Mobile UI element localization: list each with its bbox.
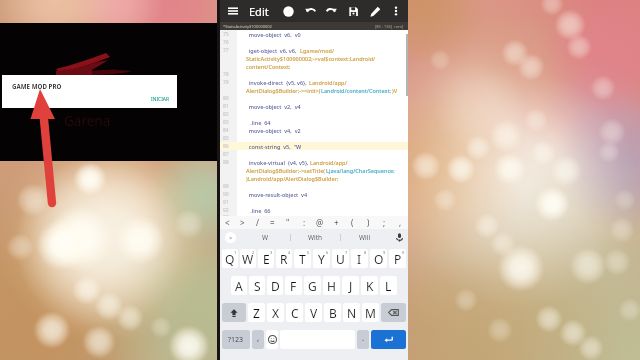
button[interactable]: B bbox=[324, 303, 341, 322]
staticText: Edit bbox=[249, 4, 269, 19]
button[interactable]: W bbox=[240, 229, 290, 245]
button[interactable]: T bbox=[294, 249, 311, 268]
button[interactable]: ; bbox=[376, 216, 392, 229]
staticText: H bbox=[327, 278, 336, 294]
button[interactable]: C bbox=[286, 303, 303, 322]
staticText: 5 bbox=[307, 250, 310, 255]
button[interactable]: J bbox=[342, 276, 359, 295]
button[interactable]: INICIAR bbox=[151, 96, 170, 103]
button[interactable]: ( bbox=[344, 216, 360, 229]
button[interactable]: U bbox=[332, 249, 349, 268]
button[interactable]: : bbox=[296, 216, 312, 229]
button[interactable]: K bbox=[361, 276, 378, 295]
staticText: move-object v2, v4 bbox=[246, 103, 301, 110]
staticText: [85 : 136] rom] bbox=[375, 24, 404, 29]
staticText: P bbox=[394, 251, 402, 267]
button[interactable]: Edit bbox=[245, 0, 273, 22]
button[interactable]: V bbox=[305, 303, 322, 322]
button[interactable]: ) bbox=[360, 216, 376, 229]
staticText: T bbox=[299, 251, 306, 267]
staticText: I bbox=[357, 251, 362, 267]
staticText: E bbox=[263, 251, 270, 267]
staticText: With bbox=[308, 233, 323, 242]
button[interactable]: Redo bbox=[321, 0, 341, 22]
staticText: A bbox=[235, 278, 243, 294]
button[interactable]: Q bbox=[222, 249, 238, 268]
button[interactable]: , bbox=[252, 330, 264, 349]
button[interactable]: Backspace bbox=[381, 303, 406, 322]
button[interactable]: + bbox=[328, 216, 344, 229]
staticText: @ bbox=[316, 217, 324, 228]
staticText: M bbox=[365, 305, 376, 321]
button[interactable]: F bbox=[285, 276, 302, 295]
staticText: / bbox=[256, 217, 259, 228]
button[interactable]: Edit text bbox=[365, 0, 385, 22]
staticText: 9 bbox=[383, 250, 386, 255]
button[interactable]: Expand suggestions bbox=[220, 229, 240, 245]
staticText: Z bbox=[253, 305, 260, 321]
staticText: move-object v4, v2 bbox=[246, 127, 301, 134]
staticText: 6 bbox=[326, 250, 329, 255]
staticText: invoke-direct {v5, v6}, bbox=[246, 79, 309, 86]
staticText: . bbox=[362, 332, 365, 343]
button[interactable]: ?123 bbox=[222, 330, 250, 349]
button[interactable]: Shift bbox=[222, 303, 246, 322]
button[interactable]: N bbox=[343, 303, 360, 322]
button[interactable]: GAME MOD PRO bbox=[2, 75, 177, 108]
staticText: INICIAR bbox=[151, 96, 170, 103]
staticText: AlertDialog$Builder;->setTitle( bbox=[246, 167, 326, 174]
staticText: N bbox=[347, 305, 357, 321]
button[interactable]: With bbox=[290, 229, 340, 245]
button[interactable]: Voice input bbox=[390, 229, 408, 245]
staticText: ) bbox=[367, 217, 370, 228]
staticText: move-object v6, v0 bbox=[246, 31, 301, 38]
staticText: R bbox=[280, 251, 288, 267]
button[interactable]: < bbox=[220, 216, 235, 229]
button[interactable]: H bbox=[323, 276, 340, 295]
staticText: content/Context; bbox=[246, 63, 291, 70]
staticText: ( bbox=[351, 217, 354, 228]
button[interactable]: P bbox=[389, 249, 406, 268]
staticText: " bbox=[286, 217, 290, 228]
button[interactable]: Y bbox=[313, 249, 330, 268]
button[interactable]: Will bbox=[340, 229, 390, 245]
staticText: L bbox=[385, 278, 392, 294]
staticText: 93 bbox=[223, 214, 229, 216]
staticText: Will bbox=[359, 233, 371, 242]
button[interactable]: More options bbox=[388, 0, 404, 22]
button[interactable]: G bbox=[304, 276, 321, 295]
staticText: D bbox=[271, 278, 280, 294]
button[interactable]: > bbox=[235, 216, 250, 229]
button[interactable]: Emoji bbox=[266, 330, 278, 349]
staticText: 75 bbox=[223, 31, 229, 38]
button[interactable]: , bbox=[392, 216, 408, 229]
button[interactable]: / bbox=[250, 216, 265, 229]
button[interactable]: W bbox=[240, 249, 256, 268]
button[interactable]: D bbox=[267, 276, 283, 295]
button[interactable]: O bbox=[370, 249, 387, 268]
staticText: 79 bbox=[223, 79, 229, 86]
button[interactable]: Undo bbox=[300, 0, 320, 22]
button[interactable]: Menu bbox=[221, 0, 244, 22]
button[interactable]: = bbox=[265, 216, 280, 229]
staticText: G bbox=[308, 278, 317, 294]
button[interactable]: I bbox=[351, 249, 368, 268]
button[interactable]: L bbox=[380, 276, 397, 295]
button[interactable]: A bbox=[231, 276, 247, 295]
button[interactable]: . bbox=[357, 330, 369, 349]
button[interactable]: X bbox=[267, 303, 284, 322]
button[interactable]: @ bbox=[312, 216, 328, 229]
button[interactable]: Z bbox=[248, 303, 265, 322]
button[interactable]: Search bbox=[278, 0, 298, 22]
staticText: Garena bbox=[64, 112, 111, 130]
button[interactable]: Save bbox=[343, 0, 363, 22]
button[interactable]: E bbox=[258, 249, 274, 268]
button[interactable]: S bbox=[249, 276, 265, 295]
button[interactable]: R bbox=[276, 249, 292, 268]
staticText: , bbox=[257, 332, 260, 343]
button[interactable]: " bbox=[280, 216, 296, 229]
button[interactable]: M bbox=[362, 303, 379, 322]
staticText: , bbox=[399, 217, 402, 228]
button[interactable]: Enter bbox=[371, 330, 406, 349]
